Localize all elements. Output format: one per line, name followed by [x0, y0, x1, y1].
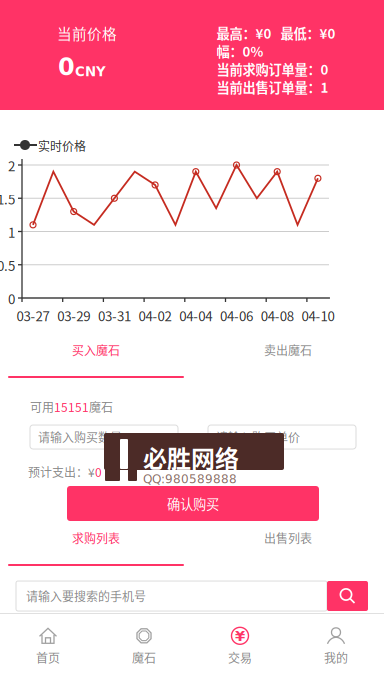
staticText: 最高：¥0 最低：¥0	[216, 23, 335, 43]
staticText: 03-27	[16, 306, 49, 325]
staticText: ¥	[235, 627, 245, 644]
staticText: 实时价格	[38, 137, 86, 154]
staticText: 买入魔石	[72, 341, 120, 359]
button[interactable]: 我的	[288, 614, 384, 679]
staticText: 0.5	[0, 256, 15, 275]
staticText: 04-10	[301, 306, 334, 325]
button[interactable]: 首页	[0, 614, 96, 679]
staticText: 当前出售订单量：1	[216, 77, 328, 97]
button[interactable]: 买入魔石	[0, 342, 192, 378]
staticText: 预计支出：¥	[28, 463, 95, 480]
staticText: 03-29	[57, 306, 90, 325]
staticText: 15151	[54, 398, 89, 415]
staticText: 0	[58, 53, 75, 81]
button[interactable]: 卖出魔石	[192, 342, 384, 378]
staticText: 可用	[30, 398, 54, 415]
staticText: 2	[8, 156, 15, 175]
staticText: 魔石	[132, 649, 156, 666]
staticText: 请输入购买单价	[216, 428, 300, 446]
staticText: 卖出魔石	[264, 341, 312, 359]
staticText: 04-04	[179, 306, 212, 325]
staticText: 首页	[36, 649, 60, 666]
staticText: 我的	[324, 649, 348, 666]
staticText: 当前价格	[57, 22, 117, 44]
staticText: 请输入购买数量	[38, 428, 122, 446]
staticText: 确认购买	[167, 494, 219, 513]
staticText: 0	[8, 289, 15, 308]
staticText: 幅：0%	[216, 41, 263, 61]
button[interactable]: 魔石	[96, 614, 192, 679]
staticText: 当前求购订单量：0	[216, 59, 328, 79]
staticText: 必胜网络	[143, 440, 239, 475]
staticText: 1	[8, 222, 15, 242]
staticText: 1.5	[0, 189, 15, 208]
staticText: QQ:980589888	[143, 472, 237, 486]
button[interactable]: ¥	[192, 614, 288, 679]
staticText: 求购列表	[72, 529, 120, 547]
staticText: 03-31	[98, 306, 131, 325]
staticText: 04-06	[220, 306, 253, 325]
button[interactable]: 出售列表	[192, 530, 384, 566]
staticText: 出售列表	[264, 529, 312, 547]
staticText: 04-08	[261, 306, 294, 325]
staticText: CNY	[75, 64, 106, 79]
staticText: 请输入要搜索的手机号	[26, 587, 146, 605]
button[interactable]: 求购列表	[0, 530, 192, 566]
staticText: 交易	[228, 649, 252, 666]
button[interactable]: 确认购买	[67, 486, 319, 521]
button[interactable]: 搜索	[327, 581, 368, 611]
staticText: 0	[95, 463, 102, 480]
staticText: 04-02	[139, 306, 172, 325]
staticText: 魔石	[89, 398, 113, 415]
